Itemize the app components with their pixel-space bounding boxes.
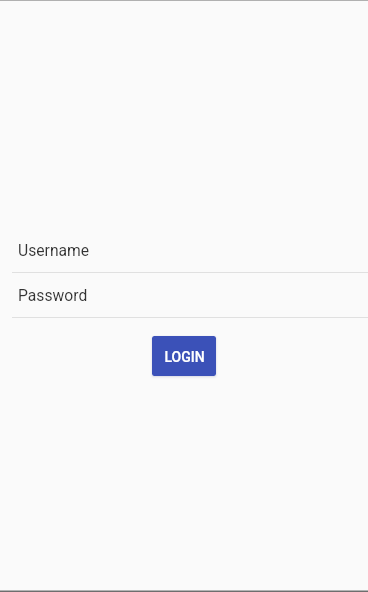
button[interactable]: Password bbox=[0, 286, 368, 318]
button[interactable]: LOGIN bbox=[152, 336, 216, 376]
staticText: LOGIN bbox=[164, 349, 205, 365]
staticText: Password bbox=[18, 286, 88, 304]
button[interactable]: Username bbox=[0, 241, 368, 273]
staticText: Username bbox=[18, 241, 90, 259]
